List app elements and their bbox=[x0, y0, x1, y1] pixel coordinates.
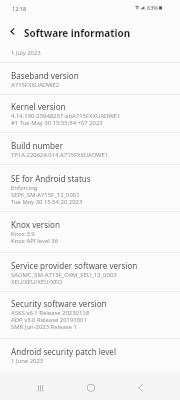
staticText: Kernel version bbox=[11, 101, 66, 112]
staticText: A715FXXUADWE2 bbox=[11, 81, 60, 89]
staticText: Service provider software version bbox=[11, 260, 138, 271]
button[interactable]: Navigate up bbox=[6, 25, 19, 38]
button[interactable]: Baseband version bbox=[0, 63, 180, 94]
staticText: Knox version bbox=[11, 219, 61, 230]
button[interactable]: Kernel version bbox=[0, 95, 180, 132]
staticText: SAOMC_SM-A715F_OXM_XEU_13_0003 XEU/XEU/X… bbox=[11, 271, 117, 286]
button[interactable]: Home bbox=[83, 382, 99, 394]
button[interactable]: Service provider software version bbox=[0, 253, 180, 291]
staticText: Enforcing SEPF_SM-A715F_12_0001 Tue May … bbox=[11, 184, 83, 206]
staticText: Build number bbox=[11, 140, 63, 151]
staticText: 63% bbox=[147, 4, 158, 11]
staticText: Knox 3.9 Knox API level 36 bbox=[11, 230, 59, 245]
staticText: Android security patch level bbox=[11, 346, 117, 357]
staticText: 12:18 bbox=[12, 5, 27, 12]
staticText: 1 June 2023 bbox=[11, 357, 44, 365]
button[interactable]: Knox version bbox=[0, 212, 180, 252]
staticText: Security software version bbox=[11, 298, 107, 309]
button[interactable]: Build number bbox=[0, 133, 180, 164]
staticText: Software information bbox=[24, 26, 131, 39]
button[interactable]: Android security patch level bbox=[0, 339, 180, 371]
button[interactable]: Recent apps bbox=[32, 382, 48, 394]
button[interactable]: Back bbox=[132, 382, 148, 394]
staticText: TP1A.220624.014.A715FXXUADWE1 bbox=[11, 151, 109, 159]
staticText: 4.14.190-25948257-abA715FXXUADWE1 #1 Tue… bbox=[11, 112, 121, 127]
staticText: 1 July 2023 bbox=[11, 49, 41, 57]
staticText: Baseband version bbox=[11, 70, 79, 81]
staticText: SE for Android status bbox=[11, 173, 91, 184]
button[interactable]: Security software version bbox=[0, 292, 180, 338]
button[interactable]: SE for Android status bbox=[0, 165, 180, 211]
staticText: ASKS v6.1 Release 20230118 ADP v3.0 Rele… bbox=[11, 309, 90, 331]
